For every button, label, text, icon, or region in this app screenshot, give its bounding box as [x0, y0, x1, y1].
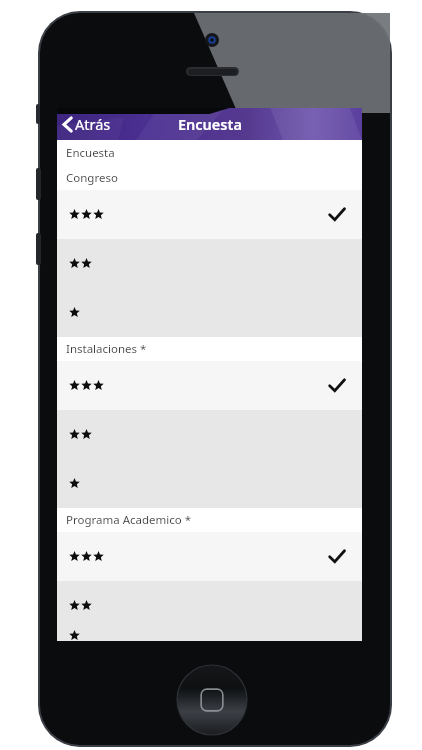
staticText: Encuesta: [178, 114, 242, 134]
button[interactable]: 1 estrellas: [57, 630, 362, 641]
button[interactable]: 2 estrellas: [57, 581, 362, 630]
button[interactable]: 2 estrellas: [57, 410, 362, 459]
button[interactable]: Atrás: [57, 108, 121, 140]
staticText: Instalaciones *: [66, 341, 147, 357]
staticText: Atrás: [75, 114, 111, 134]
button[interactable]: 3 estrellas: [57, 361, 362, 410]
button[interactable]: Congreso: [57, 165, 362, 190]
button[interactable]: 3 estrellas: [57, 532, 362, 581]
staticText: Programa Academico *: [66, 512, 192, 528]
button[interactable]: Instalaciones *: [57, 337, 362, 361]
button[interactable]: 2 estrellas: [57, 239, 362, 288]
button[interactable]: 1 estrellas: [57, 288, 362, 337]
button[interactable]: Encuesta: [57, 140, 362, 165]
staticText: Congreso: [66, 170, 118, 186]
button[interactable]: 1 estrellas: [57, 459, 362, 508]
button[interactable]: Programa Academico *: [57, 508, 362, 532]
staticText: Encuesta: [66, 145, 115, 161]
button[interactable]: 3 estrellas: [57, 190, 362, 239]
